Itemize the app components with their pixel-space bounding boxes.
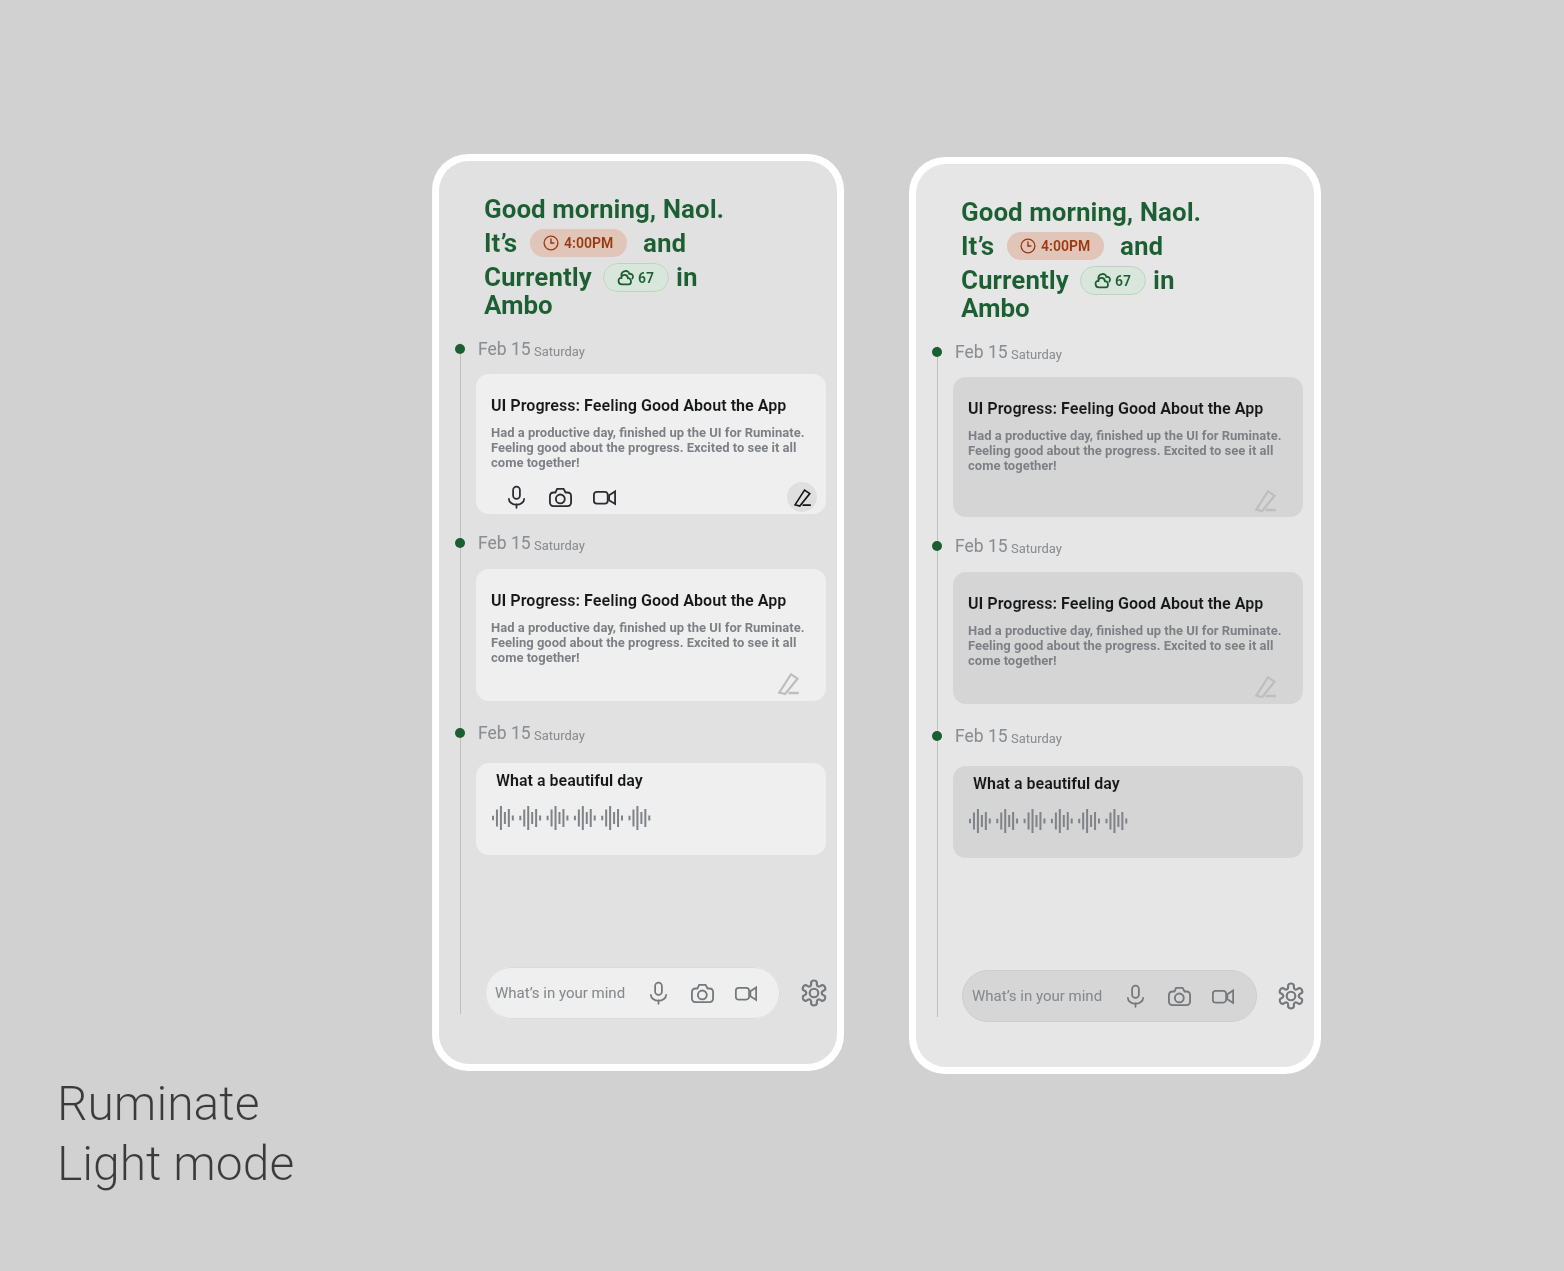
staticText: What’s in your mind — [972, 987, 1103, 1005]
staticText: What a beautiful day — [973, 775, 1120, 793]
staticText: It’s — [961, 231, 995, 261]
staticText: UI Progress: Feeling Good About the App — [491, 397, 787, 415]
staticText: Saturday — [534, 729, 585, 743]
staticText: Feb 15 — [955, 343, 1008, 362]
staticText: It’s — [484, 228, 518, 258]
button[interactable]: Edit note — [1254, 675, 1276, 697]
button[interactable]: UI Progress: Feeling Good About the App — [953, 572, 1303, 704]
staticText: in — [1153, 265, 1175, 295]
button[interactable]: What a beautiful day — [953, 766, 1303, 858]
staticText: Feb 15 — [478, 340, 531, 359]
staticText: Saturday — [534, 539, 585, 553]
button[interactable]: Record video — [1205, 978, 1241, 1014]
staticText: Feb 15 — [955, 537, 1008, 556]
staticText: Saturday — [1011, 542, 1062, 556]
staticText: 4:00PM — [564, 235, 614, 251]
button[interactable]: Record audio — [1117, 978, 1153, 1014]
staticText: Saturday — [1011, 732, 1062, 746]
staticText: UI Progress: Feeling Good About the App — [968, 400, 1264, 418]
staticText: Had a productive day, finished up the UI… — [968, 428, 1294, 473]
staticText: Feb 15 — [478, 724, 531, 743]
button[interactable]: Record audio — [498, 480, 534, 514]
button[interactable]: UI Progress: Feeling Good About the App — [476, 569, 826, 701]
button[interactable]: Edit note — [777, 672, 799, 694]
button[interactable]: Record audio — [640, 975, 676, 1011]
button[interactable]: UI Progress: Feeling Good About the App — [476, 374, 826, 514]
staticText: Had a productive day, finished up the UI… — [968, 623, 1294, 668]
button[interactable]: Record video — [586, 480, 622, 514]
staticText: 67 — [1115, 273, 1132, 289]
staticText: Feb 15 — [478, 534, 531, 553]
button[interactable]: UI Progress: Feeling Good About the App — [953, 377, 1303, 517]
staticText: Ambo — [484, 290, 553, 320]
button[interactable]: 4:00PM — [1007, 232, 1104, 260]
button[interactable]: 67 — [603, 263, 669, 292]
staticText: UI Progress: Feeling Good About the App — [968, 595, 1264, 613]
button[interactable]: Take photo — [684, 975, 720, 1011]
button[interactable]: Settings — [797, 976, 831, 1010]
staticText: Currently — [484, 262, 592, 292]
button[interactable]: What’s in your mind — [962, 970, 1257, 1022]
staticText: Ruminate — [57, 1072, 260, 1132]
button[interactable]: 4:00PM — [530, 229, 627, 257]
staticText: Good morning, Naol. — [961, 197, 1202, 227]
staticText: Had a productive day, finished up the UI… — [491, 620, 817, 665]
staticText: What’s in your mind — [495, 984, 626, 1002]
button[interactable]: 67 — [1080, 266, 1146, 295]
staticText: Feb 15 — [955, 727, 1008, 746]
staticText: Had a productive day, finished up the UI… — [491, 425, 817, 470]
button[interactable]: Edit note — [787, 482, 817, 512]
staticText: 4:00PM — [1041, 238, 1091, 254]
staticText: 67 — [638, 270, 655, 286]
staticText: Ambo — [961, 293, 1030, 323]
staticText: and — [643, 228, 687, 258]
button[interactable]: What’s in your mind — [485, 967, 780, 1019]
staticText: Saturday — [534, 345, 585, 359]
staticText: Currently — [961, 265, 1069, 295]
staticText: and — [1120, 231, 1164, 261]
button[interactable]: Edit note — [1254, 489, 1276, 511]
staticText: Light mode — [57, 1132, 295, 1192]
staticText: What a beautiful day — [496, 772, 643, 790]
button[interactable]: Record video — [728, 975, 764, 1011]
staticText: Saturday — [1011, 348, 1062, 362]
button[interactable]: Take photo — [1161, 978, 1197, 1014]
staticText: Good morning, Naol. — [484, 194, 725, 224]
staticText: UI Progress: Feeling Good About the App — [491, 592, 787, 610]
button[interactable]: Take photo — [542, 480, 578, 514]
button[interactable]: What a beautiful day — [476, 763, 826, 855]
button[interactable]: Settings — [1274, 979, 1308, 1013]
staticText: in — [676, 262, 698, 292]
